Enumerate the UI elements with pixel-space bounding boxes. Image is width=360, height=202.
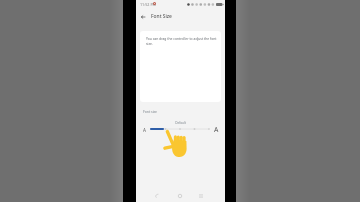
button[interactable]: Recents	[194, 189, 208, 202]
staticText: Font size	[143, 109, 158, 114]
staticText: Default	[175, 121, 186, 125]
button[interactable]: Home	[173, 189, 187, 202]
staticText: Font Size	[151, 13, 172, 20]
staticText: A	[214, 125, 219, 134]
staticText: A	[143, 127, 146, 133]
staticText: 11:52 PM	[140, 2, 156, 7]
staticText: You can drag the controller to adjust th…	[146, 36, 220, 46]
button[interactable]: Navigate up	[137, 11, 148, 22]
button[interactable]: Back	[150, 189, 164, 202]
button[interactable]	[149, 124, 211, 134]
